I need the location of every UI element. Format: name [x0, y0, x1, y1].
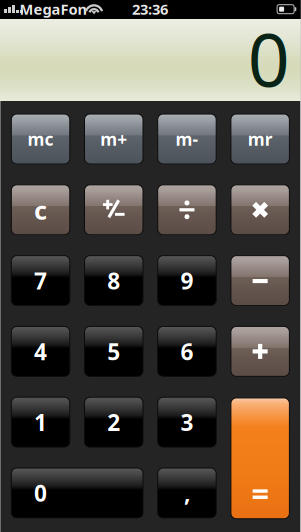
- button[interactable]: 6: [158, 326, 216, 376]
- staticText: 9: [180, 265, 193, 296]
- button[interactable]: m+: [84, 114, 143, 164]
- button[interactable]: Minus: [231, 256, 289, 306]
- button[interactable]: 4: [11, 326, 70, 376]
- staticText: 2: [107, 407, 120, 437]
- button[interactable]: 1: [11, 397, 70, 447]
- button[interactable]: Equals: [231, 397, 289, 518]
- button[interactable]: ,: [158, 468, 216, 518]
- button[interactable]: Plus minus: [84, 185, 143, 235]
- staticText: 7: [34, 265, 47, 296]
- button[interactable]: 3: [158, 397, 216, 447]
- button[interactable]: mc: [11, 114, 70, 164]
- button[interactable]: 8: [84, 256, 143, 306]
- button[interactable]: c: [11, 185, 70, 235]
- button[interactable]: 7: [11, 256, 70, 306]
- staticText: mr: [248, 127, 273, 150]
- button[interactable]: 9: [158, 256, 216, 306]
- button[interactable]: Plus: [231, 326, 289, 376]
- button[interactable]: mr: [231, 114, 289, 164]
- button[interactable]: 0: [11, 468, 143, 518]
- staticText: m+: [100, 127, 127, 150]
- staticText: 6: [180, 336, 193, 366]
- staticText: 5: [107, 336, 120, 366]
- button[interactable]: Multiply: [231, 185, 289, 235]
- staticText: 3: [180, 407, 193, 437]
- staticText: c: [34, 193, 47, 227]
- button[interactable]: m-: [158, 114, 216, 164]
- staticText: 23:36: [132, 0, 168, 19]
- staticText: MegaFon: [19, 0, 87, 19]
- staticText: 4: [34, 336, 47, 366]
- staticText: mc: [28, 127, 54, 150]
- staticText: 0: [34, 478, 47, 508]
- staticText: 8: [107, 265, 120, 296]
- staticText: ,: [184, 478, 190, 508]
- button[interactable]: 5: [84, 326, 143, 376]
- staticText: 1: [34, 407, 47, 437]
- staticText: 0: [248, 10, 290, 107]
- button[interactable]: Divide: [158, 185, 216, 235]
- staticText: m-: [175, 127, 198, 150]
- button[interactable]: 2: [84, 397, 143, 447]
